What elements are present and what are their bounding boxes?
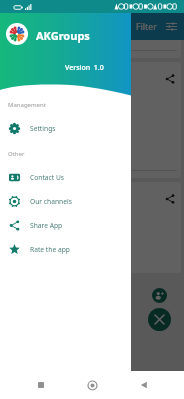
button[interactable]: Our channels	[0, 189, 131, 213]
button[interactable]: Settings	[0, 116, 131, 140]
button[interactable]: Group name	[3, 40, 181, 58]
button[interactable]: Close	[148, 308, 171, 331]
staticText: Share App	[30, 221, 63, 230]
button[interactable]: Back	[133, 374, 155, 396]
button[interactable]: Add member	[152, 288, 167, 303]
staticText: Latest news and updates	[9, 230, 103, 241]
staticText: Our channels	[30, 197, 72, 206]
staticText: Version 1.0	[65, 63, 104, 73]
staticText: 12 members	[37, 201, 73, 209]
staticText: Group name	[37, 190, 85, 201]
staticText: Settings	[30, 124, 56, 133]
staticText: AKGroups	[36, 28, 90, 43]
button[interactable]: Group name	[3, 182, 181, 273]
button[interactable]: Group name	[3, 62, 181, 178]
staticText: Filter	[136, 21, 157, 33]
staticText: Other	[8, 150, 25, 158]
staticText: 12 members	[37, 81, 73, 89]
button[interactable]: Filter	[165, 20, 178, 33]
button[interactable]: Home	[81, 374, 103, 396]
staticText: Contact Us	[30, 173, 65, 182]
button[interactable]: Share	[165, 74, 175, 84]
button[interactable]: Contact Us	[0, 165, 131, 189]
staticText: Group name	[37, 70, 85, 81]
button[interactable]: Recents	[30, 374, 52, 396]
button[interactable]: Share App	[0, 213, 131, 237]
staticText: Management	[8, 101, 46, 109]
staticText: Rate the app	[30, 245, 70, 254]
button[interactable]: Share	[165, 194, 175, 204]
button[interactable]: Open navigation drawer	[4, 20, 18, 34]
button[interactable]: Rate the app	[0, 237, 131, 261]
